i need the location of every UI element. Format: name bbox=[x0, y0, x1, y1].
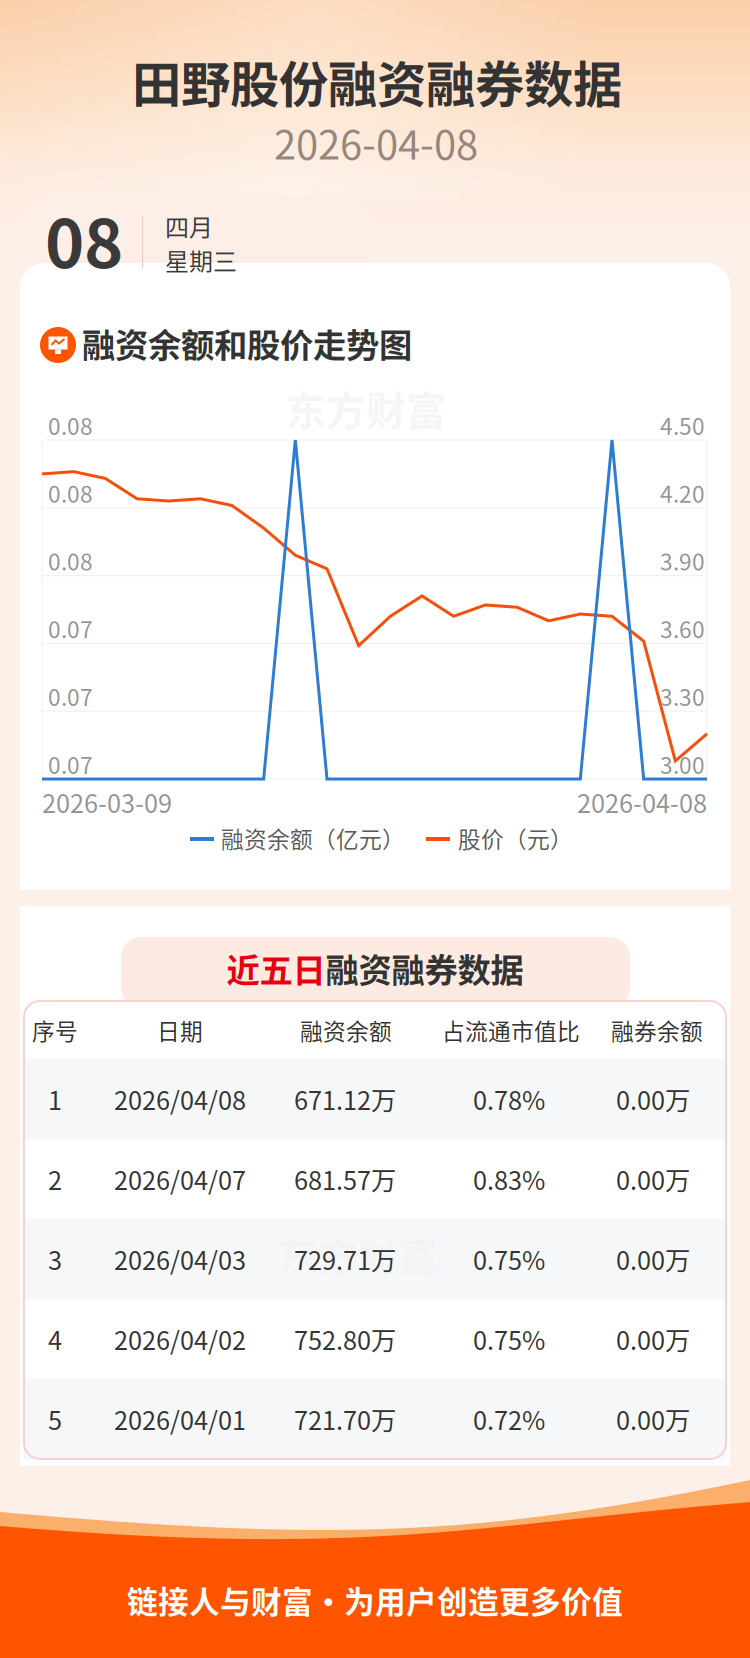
staticText: 0.00万 bbox=[616, 1081, 690, 1117]
staticText: 链接人与财富·为用户创造更多价值 bbox=[127, 1578, 623, 1622]
staticText: 2026-03-09 bbox=[42, 784, 172, 820]
staticText: 0.07 bbox=[48, 680, 93, 713]
staticText: 729.71万 bbox=[294, 1241, 396, 1277]
staticText: 2026-04-08 bbox=[274, 113, 478, 171]
staticText: 日期 bbox=[157, 1014, 203, 1046]
staticText: 08 bbox=[45, 191, 123, 287]
staticText: 星期三 bbox=[165, 243, 237, 277]
staticText: 2 bbox=[48, 1161, 62, 1197]
staticText: 融资余额 bbox=[300, 1014, 392, 1046]
staticText: 2026/04/02 bbox=[114, 1321, 246, 1357]
staticText: 0.83% bbox=[473, 1161, 545, 1197]
staticText: 0.00万 bbox=[616, 1241, 690, 1277]
staticText: 4 bbox=[48, 1321, 62, 1357]
staticText: 3 bbox=[48, 1241, 62, 1277]
staticText: 近五日 bbox=[226, 944, 325, 992]
staticText: 0.08 bbox=[48, 544, 93, 577]
staticText: 0.08 bbox=[48, 409, 93, 441]
staticText: 0.00万 bbox=[616, 1161, 690, 1197]
staticText: 四月 bbox=[165, 209, 213, 243]
staticText: 东方财富 bbox=[278, 1225, 438, 1283]
staticText: 2026/04/01 bbox=[114, 1401, 246, 1437]
staticText: 融券余额 bbox=[611, 1014, 703, 1046]
staticText: 681.57万 bbox=[294, 1161, 396, 1197]
staticText: 0.75% bbox=[473, 1321, 545, 1357]
staticText: 0.07 bbox=[48, 748, 93, 780]
staticText: 序号 bbox=[32, 1014, 78, 1046]
staticText: 股价（元） bbox=[458, 822, 573, 854]
staticText: 671.12万 bbox=[294, 1081, 396, 1117]
staticText: 3.00 bbox=[660, 748, 705, 780]
staticText: 0.72% bbox=[473, 1401, 545, 1437]
staticText: 721.70万 bbox=[294, 1401, 396, 1437]
staticText: 4.20 bbox=[660, 476, 705, 509]
staticText: 0.75% bbox=[473, 1241, 545, 1277]
staticText: 田野股份融资融券数据 bbox=[132, 45, 622, 117]
staticText: 融资融券数据 bbox=[325, 944, 523, 992]
staticText: 3.60 bbox=[660, 612, 705, 645]
staticText: 3.30 bbox=[660, 680, 705, 713]
staticText: 0.07 bbox=[48, 612, 93, 645]
staticText: 2026-04-08 bbox=[577, 784, 707, 820]
staticText: 2026/04/03 bbox=[114, 1241, 246, 1277]
staticText: 0.78% bbox=[473, 1081, 545, 1117]
staticText: 2026/04/07 bbox=[114, 1161, 246, 1197]
staticText: 融资余额和股价走势图 bbox=[82, 319, 412, 367]
staticText: 东方财富 bbox=[286, 379, 446, 437]
staticText: 752.80万 bbox=[294, 1321, 396, 1357]
staticText: 0.00万 bbox=[616, 1401, 690, 1437]
staticText: 占流通市值比 bbox=[442, 1014, 580, 1046]
staticText: 0.08 bbox=[48, 476, 93, 509]
staticText: 4.50 bbox=[660, 409, 705, 441]
staticText: 0.00万 bbox=[616, 1321, 690, 1357]
staticText: 2026/04/08 bbox=[114, 1081, 246, 1117]
staticText: 5 bbox=[48, 1401, 62, 1437]
staticText: 3.90 bbox=[660, 544, 705, 577]
staticText: 1 bbox=[48, 1081, 62, 1117]
staticText: 融资余额（亿元） bbox=[221, 822, 405, 854]
